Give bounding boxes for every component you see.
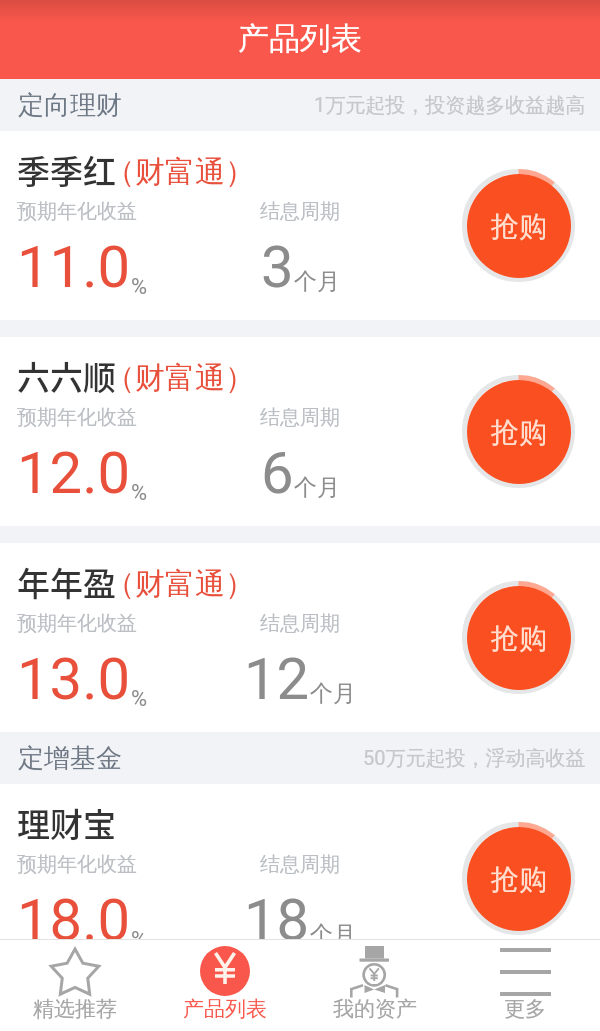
staticText: （财富通） — [105, 359, 255, 397]
button[interactable]: 六六顺 — [0, 337, 600, 526]
staticText: 更多 — [504, 996, 546, 1022]
staticText: 结息周期 — [260, 199, 340, 224]
button[interactable]: 年年盈 — [0, 543, 600, 732]
staticText: 50万元起投，浮动高收益 — [363, 746, 586, 771]
staticText: 13.0 — [17, 645, 131, 713]
staticText: 6 — [261, 439, 294, 507]
button[interactable]: 理财宝 — [0, 784, 600, 973]
staticText: 六六顺 — [17, 352, 116, 400]
staticText: 18 — [244, 886, 310, 954]
staticText: 结息周期 — [260, 611, 340, 636]
staticText: （财富通） — [105, 565, 255, 603]
button[interactable]: 抢购 — [462, 375, 575, 488]
staticText: 11.0 — [17, 233, 131, 301]
staticText: 预期年化收益 — [17, 852, 137, 877]
staticText: 季季红 — [17, 146, 116, 194]
staticText: 12.0 — [17, 439, 131, 507]
staticText: 抢购 — [491, 862, 547, 897]
button[interactable]: 抢购 — [462, 169, 575, 282]
staticText: 我的资产 — [333, 996, 417, 1022]
staticText: % — [131, 274, 148, 300]
staticText: 12 — [244, 645, 310, 713]
staticText: 产品列表 — [238, 19, 362, 58]
button[interactable]: 季季红 — [0, 131, 600, 320]
staticText: （财富通） — [105, 153, 255, 191]
staticText: 个月 — [294, 473, 340, 502]
staticText: 结息周期 — [260, 852, 340, 877]
button[interactable]: 精选推荐 — [0, 940, 150, 1031]
staticText: 年年盈 — [17, 558, 116, 606]
staticText: 抢购 — [491, 621, 547, 656]
staticText: 3 — [261, 233, 294, 301]
staticText: 抢购 — [491, 209, 547, 244]
staticText: 产品列表 — [183, 996, 267, 1022]
staticText: 预期年化收益 — [17, 199, 137, 224]
staticText: 理财宝 — [17, 799, 116, 847]
button[interactable]: 抢购 — [462, 822, 575, 935]
staticText: 预期年化收益 — [17, 611, 137, 636]
staticText: 定向理财 — [18, 89, 122, 122]
staticText: 定增基金 — [18, 742, 122, 775]
staticText: 个月 — [310, 920, 356, 949]
button[interactable]: 产品列表 — [150, 940, 300, 1031]
staticText: 个月 — [310, 679, 356, 708]
staticText: 精选推荐 — [33, 996, 117, 1022]
staticText: 预期年化收益 — [17, 405, 137, 430]
button[interactable]: 我的资产 — [300, 940, 450, 1031]
button[interactable]: 抢购 — [462, 581, 575, 694]
staticText: 抢购 — [491, 415, 547, 450]
staticText: % — [131, 686, 148, 712]
button[interactable]: 更多 — [450, 940, 600, 1031]
staticText: 个月 — [294, 267, 340, 296]
staticText: 18.0 — [17, 886, 131, 954]
staticText: % — [131, 927, 148, 953]
staticText: % — [131, 480, 148, 506]
staticText: 结息周期 — [260, 405, 340, 430]
staticText: 1万元起投，投资越多收益越高 — [314, 93, 586, 118]
